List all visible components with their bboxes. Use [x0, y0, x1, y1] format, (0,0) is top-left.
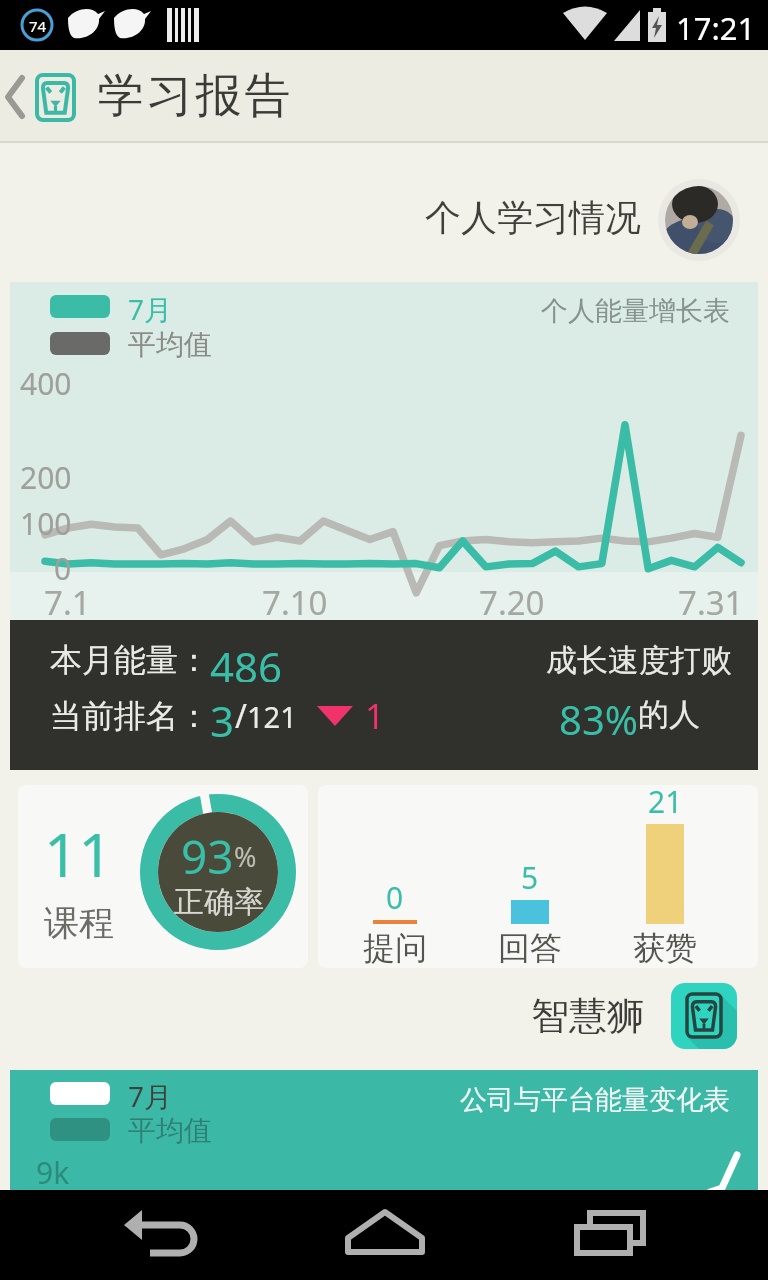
staticText: 0 [386, 877, 404, 918]
staticText: 智慧狮 [531, 992, 645, 1040]
button[interactable]: 学习报告 [0, 50, 768, 143]
staticText: 的人 [638, 695, 700, 734]
staticText: 7.10 [262, 580, 328, 625]
staticText: 当前排名： [50, 696, 210, 736]
button[interactable]: 11 [18, 785, 308, 968]
staticText: 83% [559, 692, 638, 736]
staticText: 11 [44, 813, 113, 895]
staticText: / [235, 694, 247, 738]
staticText: 个人能量增长表 [541, 294, 730, 328]
staticText: % [234, 838, 257, 875]
staticText: 100 [20, 503, 72, 544]
staticText: 正确率 [174, 883, 264, 921]
staticText: 74 [29, 16, 47, 36]
staticText: 7.1 [44, 580, 91, 625]
staticText: 5 [521, 857, 539, 898]
button[interactable]: 7月 [10, 1070, 758, 1190]
staticText: 17:21 [676, 7, 756, 49]
staticText: 121 [247, 697, 297, 736]
staticText: 93 [181, 825, 234, 888]
staticText: 回答 [498, 928, 562, 968]
staticText: 3 [210, 692, 235, 740]
staticText: 个人学习情况 [425, 195, 641, 240]
staticText: 400 [20, 363, 72, 404]
button[interactable]: 0 [318, 785, 758, 968]
staticText: 7月 [128, 1077, 173, 1115]
button[interactable] [658, 179, 740, 261]
staticText: 200 [20, 457, 72, 498]
staticText: 平均值 [128, 1113, 212, 1148]
button[interactable]: 本月能量： [10, 620, 758, 770]
staticText: 0 [54, 548, 72, 589]
staticText: 9k [36, 1152, 70, 1193]
staticText: 成长速度打败 [546, 641, 732, 680]
staticText: 提问 [363, 928, 427, 968]
staticText: 平均值 [128, 327, 212, 362]
staticText: 7月 [128, 290, 173, 328]
button[interactable] [337, 1190, 433, 1280]
staticText: 7.31 [678, 580, 744, 625]
staticText: 获赞 [633, 928, 697, 968]
button[interactable] [671, 983, 737, 1049]
staticText: 7.20 [479, 580, 545, 625]
staticText: 公司与平台能量变化表 [460, 1083, 730, 1117]
button[interactable] [562, 1190, 658, 1280]
staticText: 21 [648, 785, 683, 822]
staticText: 课程 [44, 901, 114, 945]
staticText: 学习报告 [96, 67, 292, 125]
staticText: 本月能量： [50, 640, 210, 680]
staticText: 486 [210, 638, 283, 682]
button[interactable] [120, 1190, 216, 1280]
staticText: 1 [365, 693, 385, 739]
button[interactable]: 7月 [10, 282, 758, 620]
